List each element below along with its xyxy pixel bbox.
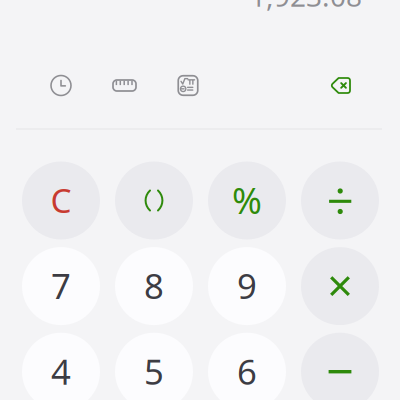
button[interactable] [301,333,379,400]
button[interactable]: Unit converter [113,74,136,96]
staticText: 4 [51,348,71,394]
button[interactable] [115,161,193,239]
button[interactable]: 6 [208,333,286,400]
button[interactable]: Backspace [330,77,351,94]
staticText: 9 [237,263,257,309]
button[interactable]: History [50,74,72,96]
staticText: 7 [51,263,71,309]
button[interactable]: Scientific functions [178,74,198,96]
button[interactable]: C [22,161,100,239]
button[interactable]: 7 [22,247,100,325]
button[interactable] [301,247,379,325]
staticText: 8 [144,263,164,309]
button[interactable]: 9 [208,247,286,325]
button[interactable]: 4 [22,333,100,400]
staticText: % [232,176,262,224]
button[interactable] [301,161,379,239]
staticText: 5 [144,348,164,394]
staticText: C [50,178,71,222]
staticText: 1,923.08 [250,0,362,15]
staticText: 6 [237,348,257,394]
button[interactable]: 5 [115,333,193,400]
button[interactable]: 8 [115,247,193,325]
button[interactable]: % [208,161,286,239]
